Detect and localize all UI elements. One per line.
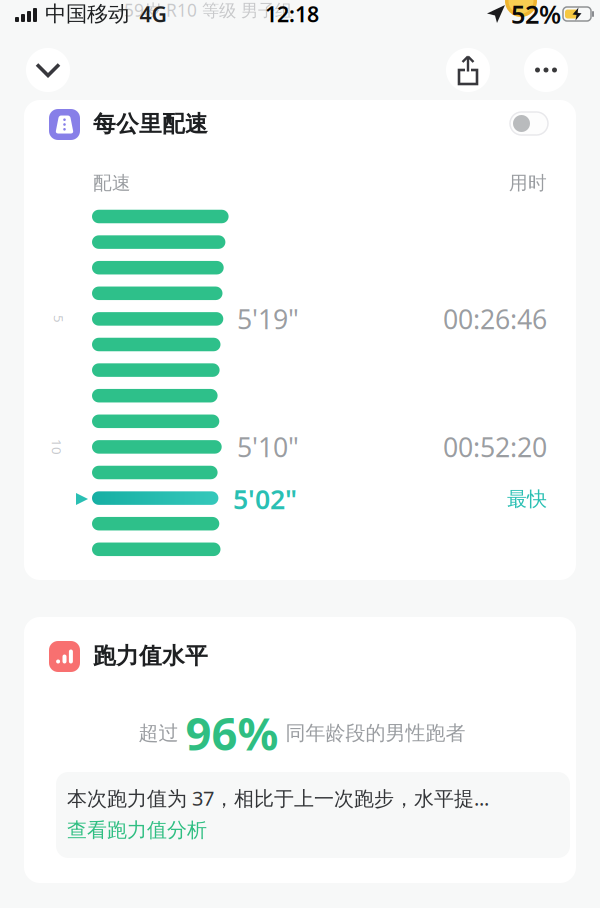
staticText: 跑力值水平 <box>93 642 208 670</box>
staticText: 12:18 <box>265 0 319 28</box>
staticText: -59岁 R10 等级 男子组 <box>118 0 292 21</box>
staticText: 4G <box>139 0 166 28</box>
staticText: 用时 <box>509 171 547 194</box>
button[interactable]: 收起 <box>26 48 70 92</box>
staticText: 5'19" <box>237 301 299 337</box>
staticText: 超过 <box>138 721 178 745</box>
button[interactable]: 分享 <box>446 48 490 92</box>
staticText: 5 <box>55 310 63 328</box>
staticText: 10 <box>49 438 65 456</box>
staticText: 00:26:46 <box>443 301 547 337</box>
button[interactable]: 更多 <box>524 48 568 92</box>
button[interactable]: 查看跑力值分析 <box>67 818 267 842</box>
staticText: 同年龄段的男性跑者 <box>285 721 465 745</box>
staticText: 中国移动 <box>45 1 129 27</box>
staticText: 每公里配速 <box>93 110 208 138</box>
staticText: 本次跑力值为 37，相比于上一次跑步，水平提... <box>67 785 489 811</box>
staticText: 00:52:20 <box>443 429 547 465</box>
staticText: 96% <box>185 703 278 763</box>
staticText: 5'10" <box>237 429 299 465</box>
staticText: 配速 <box>93 171 131 194</box>
staticText: 5'02" <box>233 481 297 517</box>
staticText: 最快 <box>507 487 547 511</box>
staticText: 查看跑力值分析 <box>67 818 207 842</box>
button[interactable]: 每公里配速开关 <box>510 112 548 135</box>
staticText: 52% <box>511 0 561 31</box>
